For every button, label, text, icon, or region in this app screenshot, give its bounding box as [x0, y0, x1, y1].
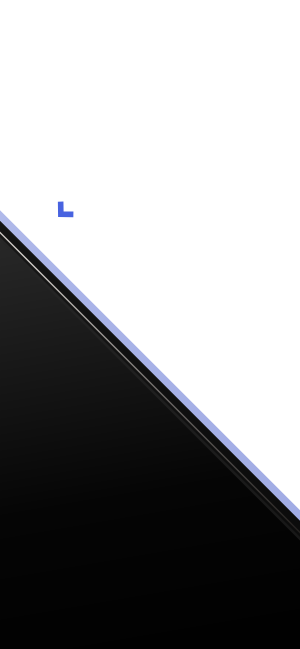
- button[interactable]: Phone preview, back: [0, 0, 300, 649]
